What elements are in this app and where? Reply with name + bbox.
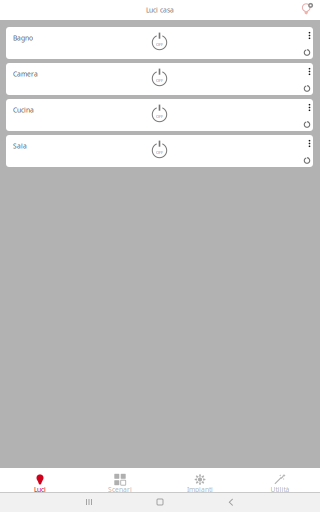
- staticText: Scenari: [108, 485, 132, 494]
- button[interactable]: Altre opzioni: [300, 99, 310, 112]
- button[interactable]: Luci: [0, 469, 80, 491]
- button[interactable]: Timer: [300, 48, 310, 59]
- staticText: OFF: [156, 150, 163, 155]
- staticText: Cucina: [13, 106, 34, 114]
- staticText: OFF: [156, 78, 163, 83]
- button[interactable]: Home: [153, 492, 167, 512]
- button[interactable]: Altre opzioni: [300, 135, 310, 148]
- button[interactable]: Bagno: [6, 27, 313, 59]
- button[interactable]: Camera: [6, 63, 313, 95]
- button[interactable]: Impianti: [160, 469, 240, 491]
- button[interactable]: Impostazioni posizione: [298, 0, 318, 20]
- button[interactable]: Timer: [300, 156, 310, 167]
- button[interactable]: Altre opzioni: [300, 63, 310, 76]
- button[interactable]: Indietro: [224, 492, 238, 512]
- staticText: Bagno: [13, 34, 33, 42]
- button[interactable]: Timer: [300, 120, 310, 131]
- button[interactable]: Timer: [300, 84, 310, 95]
- staticText: Luci: [34, 485, 46, 494]
- button[interactable]: Altre opzioni: [300, 27, 310, 40]
- staticText: Sala: [13, 142, 27, 150]
- button[interactable]: Cucina: [6, 99, 313, 131]
- staticText: Utilità: [270, 485, 289, 494]
- staticText: Impianti: [187, 485, 213, 494]
- button[interactable]: Sala: [6, 135, 313, 167]
- staticText: OFF: [156, 114, 163, 119]
- button[interactable]: Utilità: [240, 469, 320, 491]
- button[interactable]: Recenti: [82, 492, 96, 512]
- staticText: Camera: [13, 70, 38, 78]
- staticText: Luci casa: [146, 6, 174, 14]
- staticText: OFF: [156, 42, 163, 47]
- button[interactable]: Scenari: [80, 469, 160, 491]
